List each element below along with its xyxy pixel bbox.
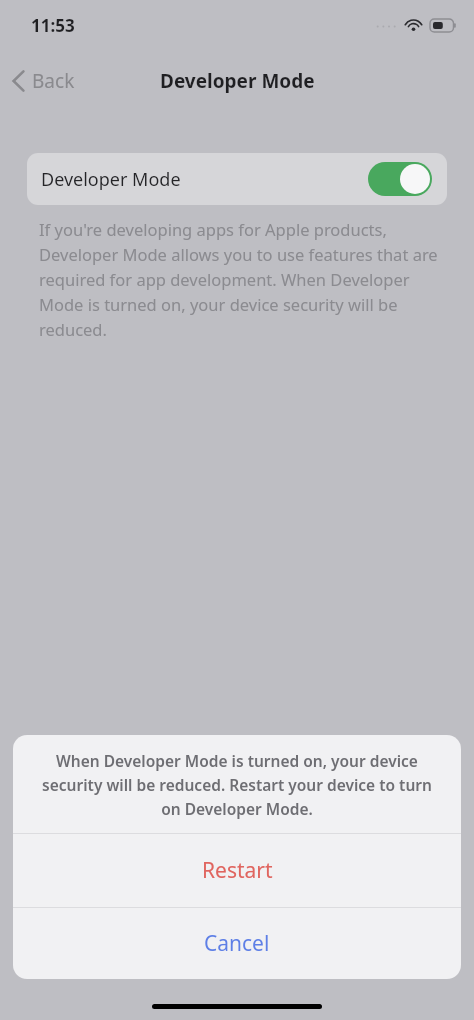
button[interactable]: Developer Mode toggle, on xyxy=(368,162,432,196)
staticText: Restart xyxy=(202,856,273,885)
button[interactable]: Cancel xyxy=(13,908,461,979)
staticText: Developer Mode xyxy=(160,68,315,94)
button[interactable]: Restart xyxy=(13,834,461,907)
staticText: 11:53 xyxy=(31,14,75,37)
staticText: Cancel xyxy=(204,929,270,958)
staticText: When Developer Mode is turned on, your d… xyxy=(31,750,443,819)
button[interactable]: Back xyxy=(0,62,85,100)
staticText: If you're developing apps for Apple prod… xyxy=(39,218,440,340)
staticText: Back xyxy=(32,68,75,94)
staticText: Developer Mode xyxy=(41,167,181,192)
button[interactable]: Developer Mode xyxy=(27,153,447,205)
